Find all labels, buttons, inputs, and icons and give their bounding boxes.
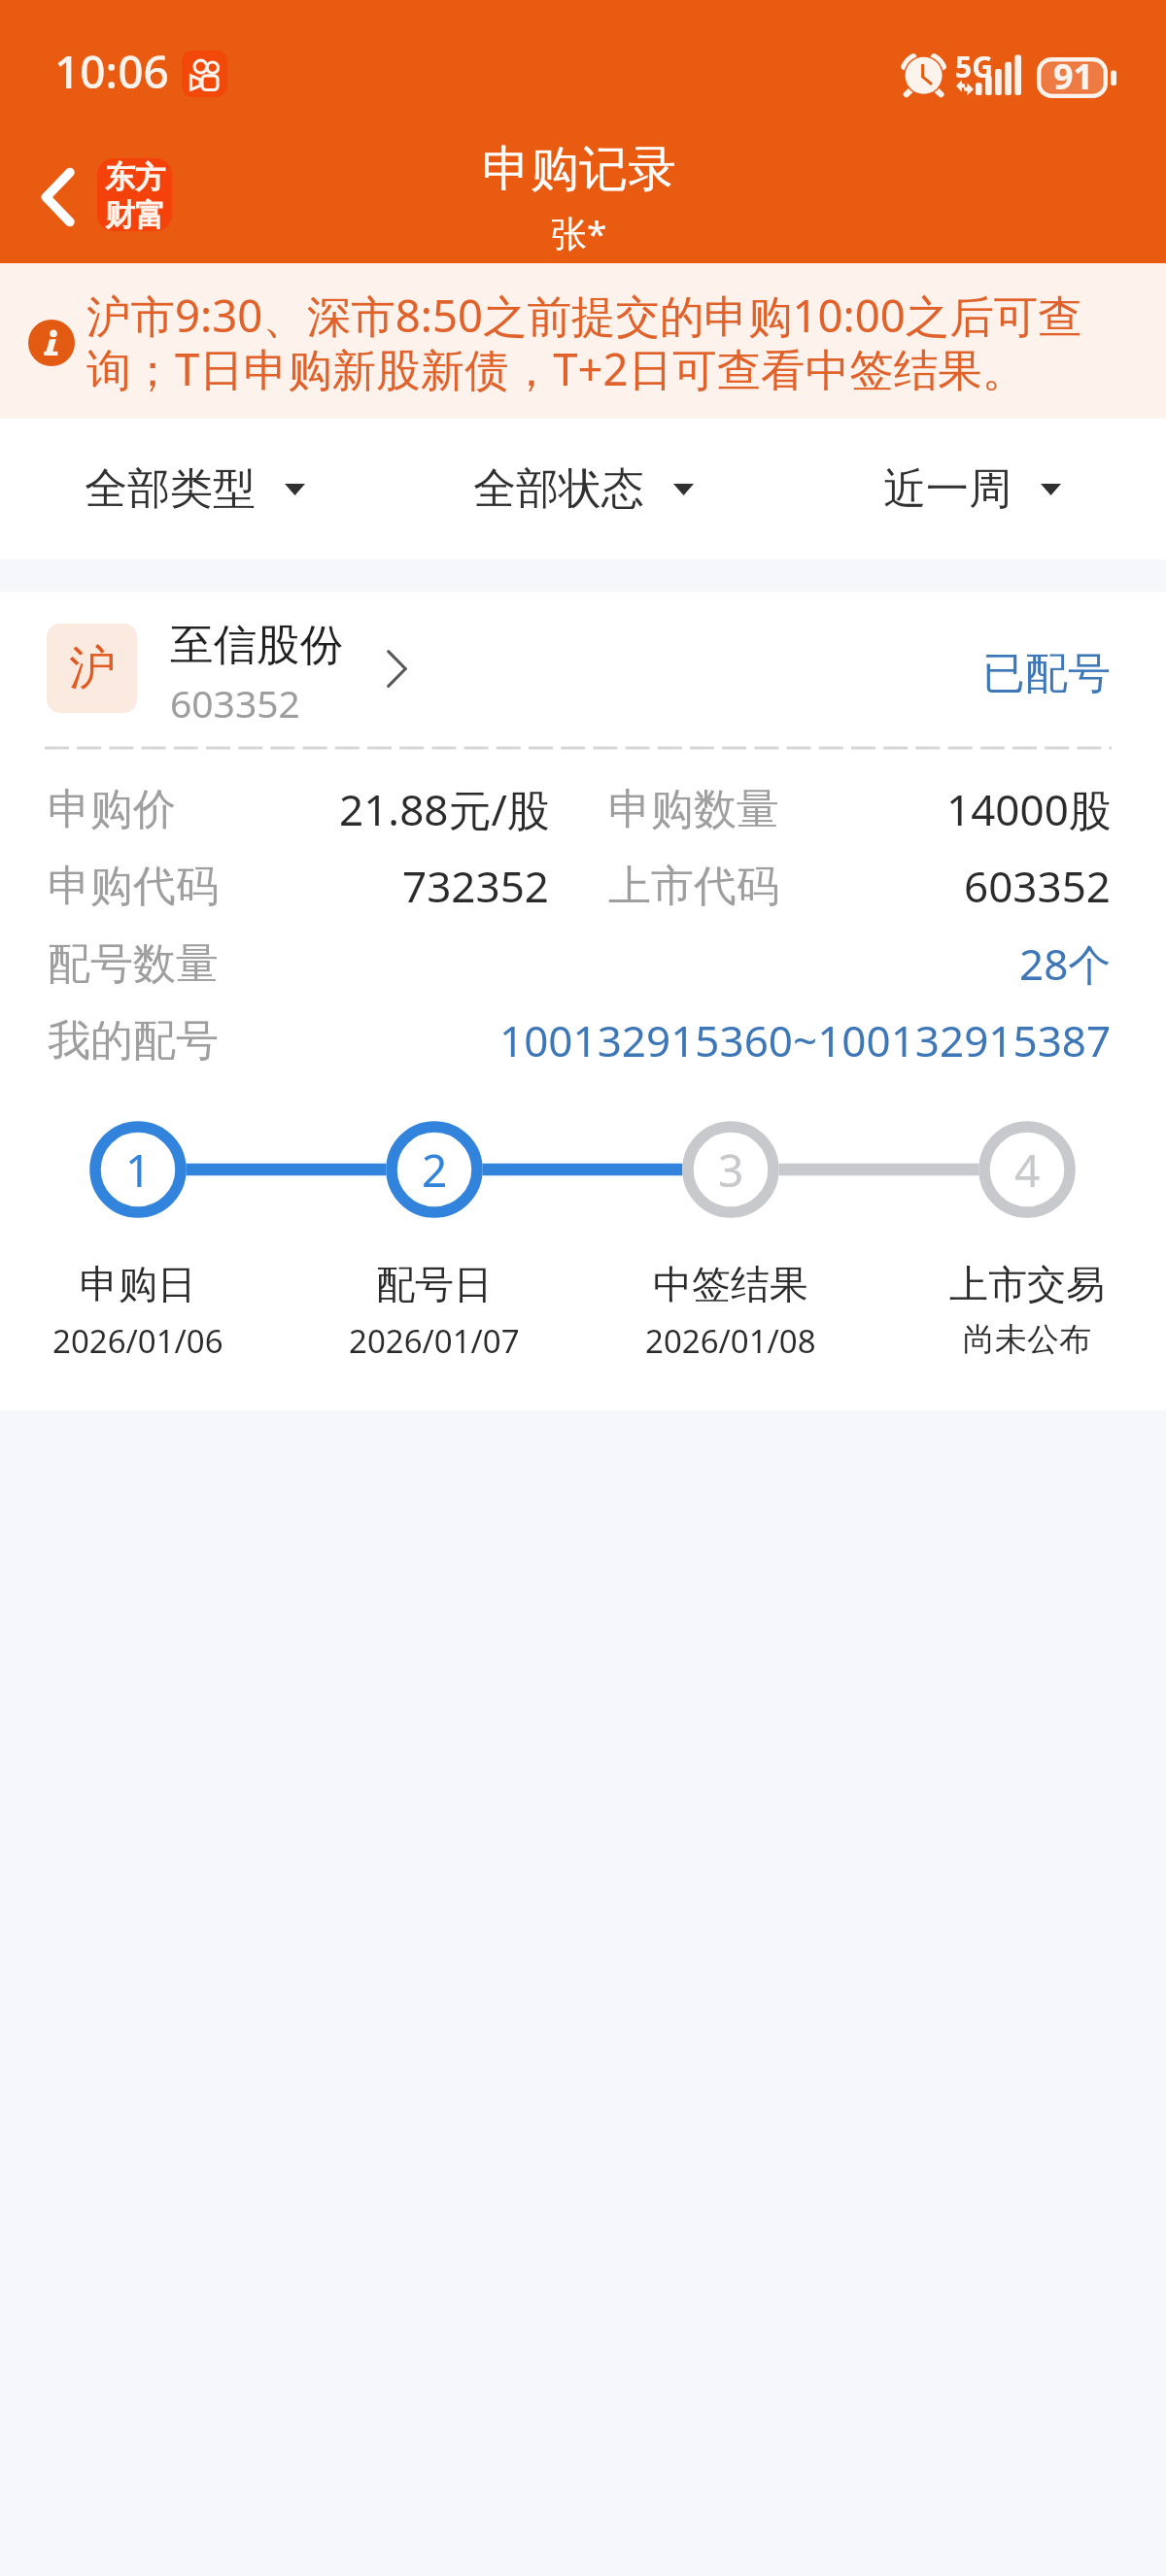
staticText: 100132915360~100132915387: [499, 1011, 1112, 1069]
button[interactable]: 全部状态: [389, 419, 777, 559]
staticText: 已配号: [982, 647, 1111, 700]
staticText: 10:06: [54, 41, 169, 102]
staticText: 14000股: [946, 780, 1112, 838]
staticText: 中签结果: [653, 1260, 808, 1308]
staticText: 申购数量: [608, 783, 779, 836]
staticText: 至信股份: [170, 618, 343, 672]
staticText: 申购价: [48, 783, 176, 836]
button[interactable]: 全部类型: [0, 419, 389, 559]
staticText: 我的配号: [48, 1014, 219, 1068]
staticText: 配号数量: [48, 937, 219, 991]
staticText: 2026/01/08: [645, 1319, 816, 1363]
staticText: 申购日: [80, 1260, 196, 1308]
staticText: 2026/01/06: [52, 1319, 223, 1363]
button[interactable]: 沪: [0, 592, 1166, 735]
staticText: 沪市9:30、深市8:50之前提交的申购10:00之后可查 询；T日申购新股新债…: [86, 285, 1082, 398]
staticText: 上市交易: [949, 1260, 1105, 1308]
staticText: 全部状态: [473, 462, 644, 516]
staticText: 4: [1014, 1139, 1041, 1201]
staticText: 东方: [105, 158, 165, 196]
staticText: 财富: [105, 196, 165, 231]
button[interactable]: 配号数量: [0, 931, 1166, 997]
staticText: 603352: [170, 677, 300, 729]
staticText: 1: [125, 1139, 152, 1201]
staticText: 5G: [955, 47, 993, 86]
staticText: 上市代码: [608, 860, 779, 913]
staticText: 2026/01/07: [349, 1319, 520, 1363]
staticText: 732352: [402, 857, 550, 915]
staticText: 尚未公布: [963, 1319, 1091, 1360]
staticText: 张*: [551, 208, 607, 257]
staticText: 603352: [964, 857, 1112, 915]
button[interactable]: 近一周: [777, 419, 1166, 559]
staticText: 2: [422, 1139, 448, 1201]
staticText: 28个: [1019, 934, 1112, 993]
staticText: 21.88元/股: [339, 780, 550, 838]
button[interactable]: Back: [17, 153, 97, 242]
staticText: 沪: [69, 639, 116, 697]
staticText: 申购代码: [48, 860, 219, 913]
button[interactable]: East Money home: [97, 158, 172, 231]
staticText: 91: [1038, 52, 1109, 100]
staticText: 近一周: [883, 462, 1012, 516]
staticText: 配号日: [376, 1260, 493, 1308]
staticText: 3: [718, 1139, 744, 1201]
staticText: 全部类型: [85, 462, 256, 516]
staticText: 申购记录: [482, 139, 676, 200]
button[interactable]: 我的配号: [0, 1007, 1166, 1073]
